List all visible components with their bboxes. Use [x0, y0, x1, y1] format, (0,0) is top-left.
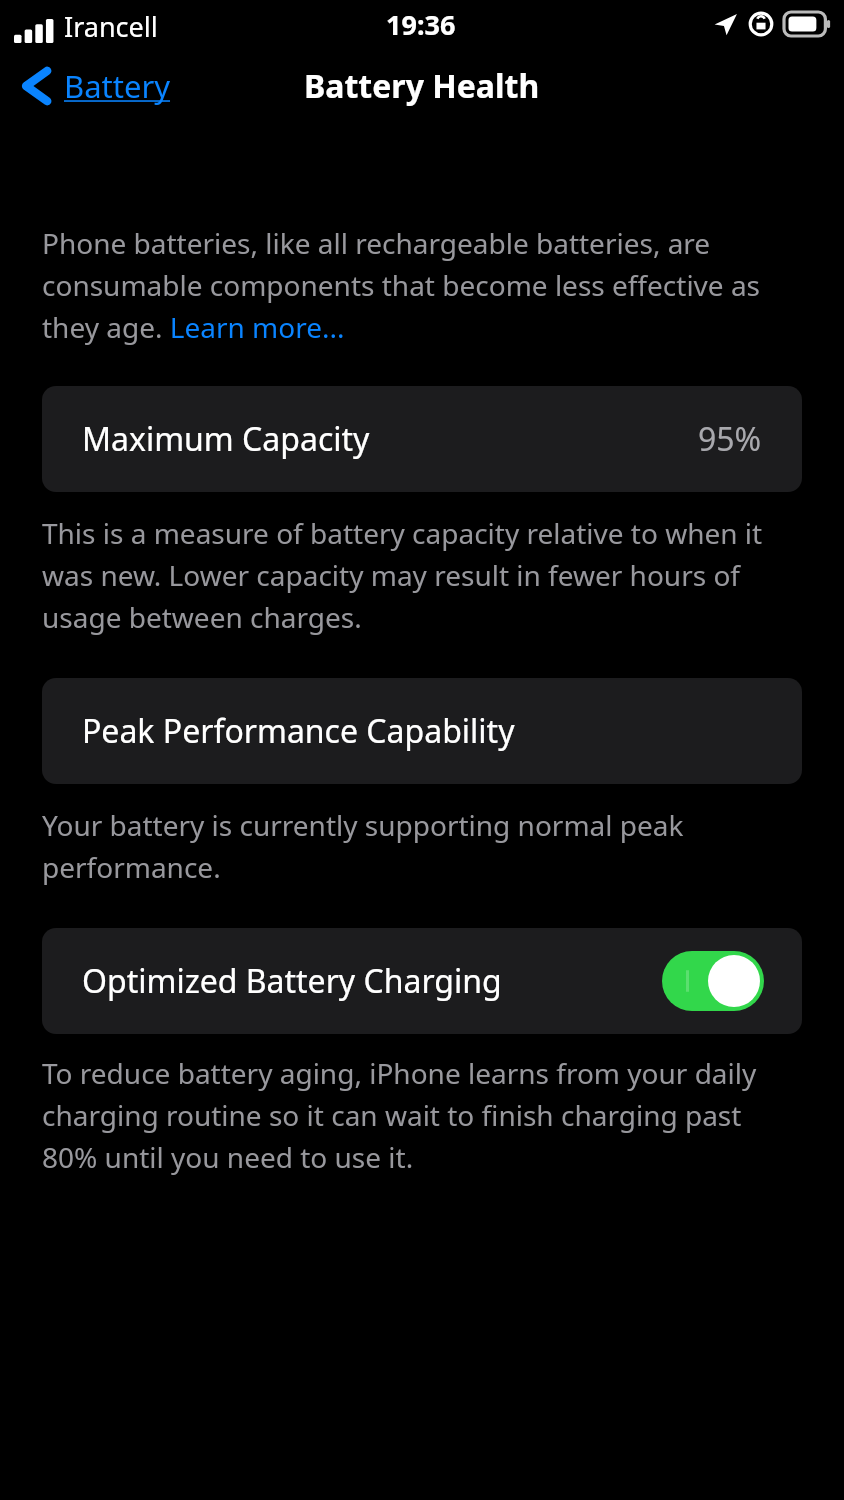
staticText: Your battery is currently supporting nor… — [42, 806, 802, 886]
staticText: Battery — [64, 65, 171, 107]
staticText: Battery Health — [304, 64, 540, 108]
button[interactable]: Maximum Capacity — [42, 386, 802, 492]
button[interactable]: Optimized Battery Charging — [42, 928, 802, 1034]
staticText: Maximum Capacity — [82, 417, 370, 461]
staticText: Peak Performance Capability — [82, 709, 515, 753]
button[interactable]: Back — [20, 65, 171, 107]
staticText: 95% — [698, 417, 762, 461]
button[interactable]: Optimized Battery Charging toggle — [662, 951, 764, 1011]
staticText: 19:36 — [386, 6, 456, 43]
staticText: Phone batteries, like all rechargeable b… — [42, 224, 802, 346]
button[interactable]: Peak Performance Capability — [42, 678, 802, 784]
staticText: To reduce battery aging, iPhone learns f… — [42, 1054, 802, 1176]
staticText: Optimized Battery Charging — [82, 959, 502, 1003]
staticText: Irancell — [64, 8, 158, 45]
other: Back — [20, 65, 54, 107]
staticText: This is a measure of battery capacity re… — [42, 514, 802, 636]
